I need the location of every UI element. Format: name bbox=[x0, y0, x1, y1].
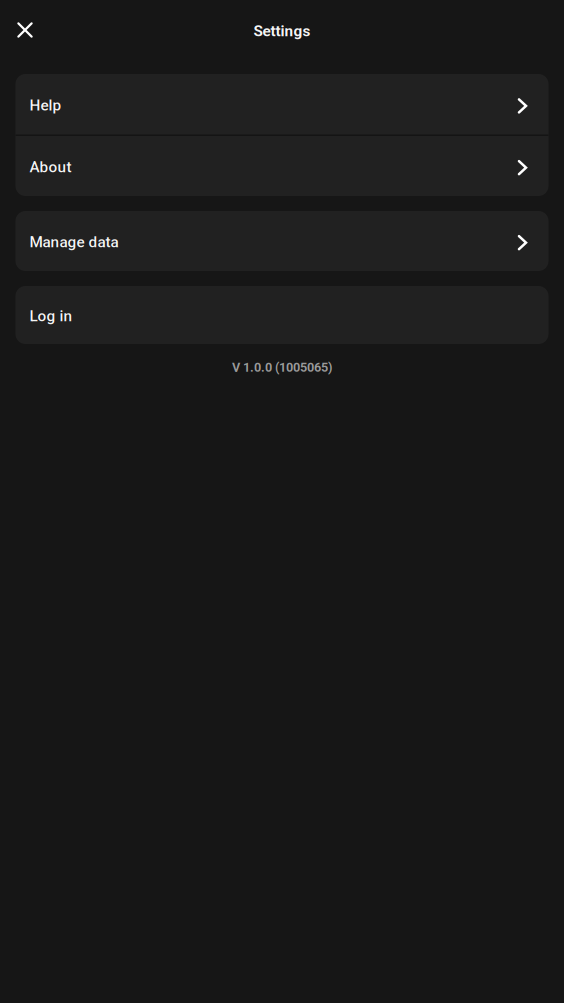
button[interactable]: Help bbox=[15, 74, 548, 134]
button[interactable]: Manage data bbox=[15, 211, 548, 271]
staticText: About bbox=[29, 158, 71, 176]
staticText: V 1.0.0 (1005065) bbox=[232, 360, 332, 375]
staticText: Manage data bbox=[29, 233, 118, 251]
button[interactable]: About bbox=[15, 136, 548, 196]
button[interactable]: Close bbox=[3, 8, 47, 52]
staticText: Settings bbox=[253, 22, 310, 40]
button[interactable]: Log in bbox=[15, 286, 548, 344]
staticText: Help bbox=[29, 96, 61, 114]
staticText: Log in bbox=[29, 307, 72, 325]
